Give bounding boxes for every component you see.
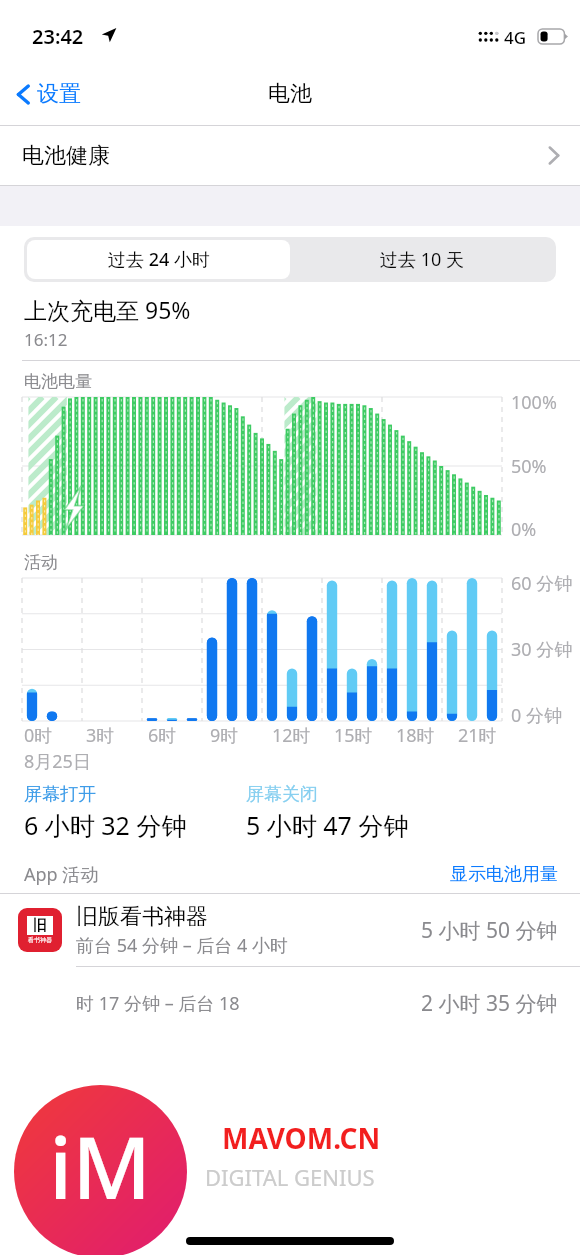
staticText: MAVOM.CN (222, 1119, 381, 1157)
staticText: 100% (511, 390, 557, 415)
staticText: 9时 (210, 723, 239, 748)
staticText: 电池电量 (24, 371, 92, 392)
button[interactable]: 时 17 分钟 – 后台 18 (0, 967, 580, 1039)
staticText: 15时 (334, 723, 373, 748)
staticText: 50% (511, 454, 547, 479)
button[interactable]: 电池健康 (0, 126, 580, 185)
staticText: 18时 (396, 723, 435, 748)
staticText: 显示电池用量 (450, 863, 558, 886)
staticText: 21时 (458, 723, 497, 748)
staticText: 设置 (37, 80, 81, 108)
staticText: 3时 (86, 723, 115, 748)
staticText: 6 小时 32 分钟 (24, 808, 187, 842)
button[interactable]: 过去 24 小时 (27, 240, 290, 279)
button[interactable]: 显示电池用量 (450, 863, 558, 886)
staticText: 0 分钟 (511, 703, 562, 728)
staticText: 5 小时 47 分钟 (246, 808, 409, 842)
staticText: 旧 (33, 917, 47, 935)
staticText: 23:42 (32, 23, 84, 50)
staticText: 过去 24 小时 (108, 247, 210, 272)
staticText: 屏幕打开 (24, 783, 96, 806)
button[interactable]: 旧 (0, 894, 580, 966)
staticText: 电池健康 (22, 142, 110, 170)
staticText: 时 17 分钟 – 后台 18 (76, 991, 240, 1016)
button[interactable]: 过去 10 天 (290, 240, 553, 279)
staticText: 60 分钟 (511, 571, 573, 596)
button[interactable]: 设置 (12, 74, 85, 114)
staticText: 活动 (24, 552, 58, 573)
staticText: App 活动 (24, 862, 99, 887)
staticText: 旧版看书神器 (76, 903, 208, 931)
staticText: 16:12 (24, 328, 68, 351)
staticText: 8月25日 (24, 749, 91, 774)
staticText: 2 小时 35 分钟 (421, 989, 558, 1018)
staticText: 上次充电至 95% (24, 294, 191, 325)
staticText: 0% (511, 517, 537, 542)
staticText: 前台 54 分钟 – 后台 4 小时 (76, 933, 288, 958)
staticText: 屏幕关闭 (246, 783, 318, 806)
staticText: 0时 (24, 723, 53, 748)
staticText: 12时 (272, 723, 311, 748)
staticText: 30 分钟 (511, 637, 573, 662)
staticText: iM (49, 1107, 152, 1224)
staticText: 6时 (148, 723, 177, 748)
staticText: 4G (504, 26, 527, 49)
staticText: 过去 10 天 (380, 247, 464, 272)
staticText: 看书神器 (28, 936, 52, 944)
staticText: 电池 (268, 80, 312, 108)
staticText: 5 小时 50 分钟 (421, 916, 558, 945)
staticText: DIGITAL GENIUS (205, 1162, 375, 1192)
